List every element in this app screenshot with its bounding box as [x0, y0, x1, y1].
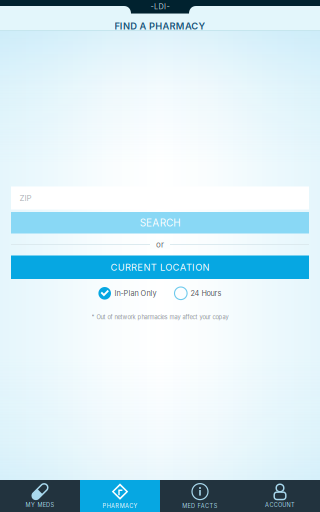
button[interactable]: MY MEDS [0, 480, 80, 512]
staticText: -LDI- [150, 2, 169, 11]
staticText: PHARMACY [102, 503, 138, 509]
button[interactable]: SEARCH [11, 212, 309, 233]
button[interactable]: PHARMACY [80, 480, 160, 512]
button[interactable]: ACCOUNT [240, 480, 320, 512]
staticText: ZIP [19, 193, 31, 203]
staticText: MY MEDS [26, 502, 54, 508]
staticText: FIND A PHARMACY [115, 20, 205, 32]
staticText: 24 Hours [191, 289, 222, 298]
button[interactable]: MED FACTS [160, 480, 240, 512]
staticText: In-Plan Only [114, 289, 156, 298]
button[interactable]: CURRENT LOCATION [11, 255, 309, 279]
staticText: * Out of network pharmacies may affect y… [91, 314, 228, 320]
button[interactable]: In-Plan Only [98, 287, 156, 300]
staticText: MED FACTS [182, 503, 218, 509]
staticText: CURRENT LOCATION [110, 262, 209, 273]
staticText: or [156, 240, 164, 249]
button[interactable]: 24 Hours [174, 287, 222, 300]
staticText: SEARCH [140, 217, 180, 229]
staticText: ACCOUNT [265, 502, 295, 508]
